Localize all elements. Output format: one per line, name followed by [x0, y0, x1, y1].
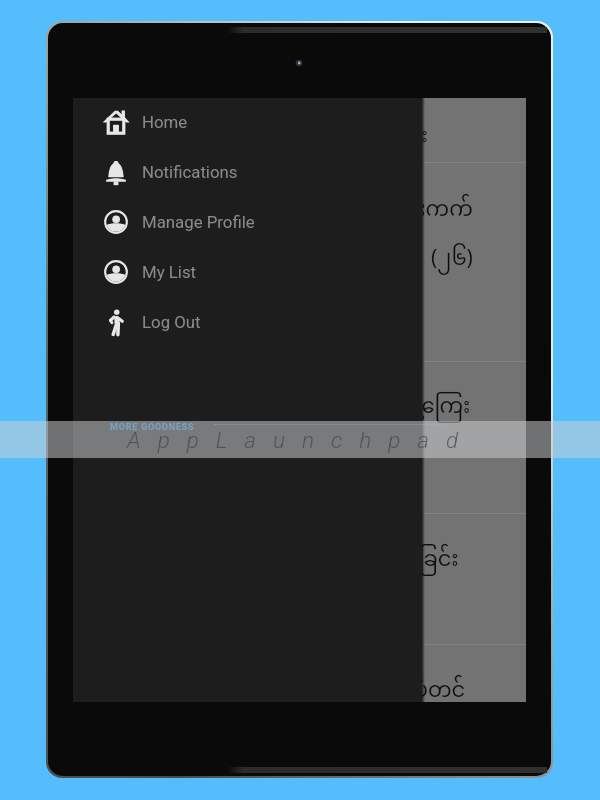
- button[interactable]: [73, 645, 526, 702]
- button[interactable]: Notifications: [73, 147, 422, 197]
- other: Home: [102, 108, 130, 136]
- staticText: Manage Profile: [142, 212, 255, 232]
- other: Log Out: [102, 308, 130, 336]
- staticText: AppLaunchpad: [127, 427, 476, 453]
- staticText: များ: [395, 117, 428, 158]
- staticText: (၂၆): [431, 237, 473, 283]
- staticText: အခွန့်ကြေး: [373, 385, 471, 431]
- other: My List: [102, 258, 130, 286]
- staticText: အချင်ခြင်း: [363, 538, 459, 584]
- staticText: Notifications: [142, 162, 238, 182]
- staticText: My List: [142, 262, 197, 282]
- other: Notifications: [102, 158, 130, 186]
- staticText: Log Out: [142, 312, 201, 332]
- button[interactable]: [73, 98, 526, 162]
- button[interactable]: Home: [73, 97, 422, 147]
- staticText: MORE GOODNESS: [110, 422, 195, 433]
- staticText: မှတ်ပုံတင်: [376, 669, 466, 702]
- button[interactable]: [73, 163, 526, 361]
- button[interactable]: Manage Profile: [73, 197, 422, 247]
- button[interactable]: [73, 362, 526, 513]
- other: Manage Profile: [102, 208, 130, 236]
- button[interactable]: [73, 514, 526, 645]
- button[interactable]: My List: [73, 247, 422, 297]
- staticText: သတင်းများကက်: [321, 188, 473, 234]
- staticText: Home: [142, 112, 188, 132]
- button[interactable]: Log Out: [73, 297, 422, 347]
